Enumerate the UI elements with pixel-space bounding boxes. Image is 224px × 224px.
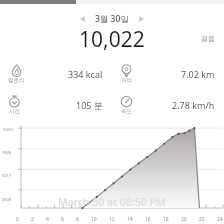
staticText: 10,022 (79, 25, 145, 51)
button[interactable]: Speed (120, 91, 215, 118)
button[interactable]: Distance (120, 60, 215, 87)
staticText: 16 (145, 216, 151, 223)
staticText: 6 (61, 216, 64, 223)
staticText: 7826 (2, 150, 12, 155)
staticText: 2 (31, 216, 34, 223)
staticText: 시간 (9, 108, 20, 115)
staticText: 10433 (2, 127, 14, 132)
staticText: 5217 (2, 173, 12, 178)
staticText: 칼로리 (8, 77, 25, 84)
staticText: 22 (199, 216, 205, 223)
staticText: 14 (127, 216, 133, 223)
button[interactable]: Time (8, 91, 103, 118)
staticText: 2608 (2, 197, 12, 202)
staticText: 거리 (121, 77, 132, 84)
staticText: 4 (46, 216, 49, 223)
staticText: 걸음 (201, 34, 215, 43)
staticText: 12 (109, 216, 115, 223)
staticText: 속도 (121, 108, 132, 115)
staticText: March 30 at 08:50 PM (58, 195, 166, 209)
staticText: 18 (163, 216, 169, 223)
staticText: 0 (16, 216, 19, 223)
button[interactable]: Calories (8, 60, 103, 87)
staticText: 8 (76, 216, 79, 223)
staticText: 2.78 km/h (172, 99, 215, 111)
staticText: 3월 30일 (95, 13, 129, 25)
button[interactable]: Previous day (76, 12, 89, 25)
staticText: 20 (181, 216, 187, 223)
staticText: 105 분 (76, 99, 103, 111)
staticText: 24 (217, 216, 223, 223)
staticText: 7.02 km (181, 68, 215, 80)
button[interactable]: Next day (135, 12, 148, 25)
staticText: 10 (91, 216, 97, 223)
staticText: 334 kcal (68, 68, 103, 80)
